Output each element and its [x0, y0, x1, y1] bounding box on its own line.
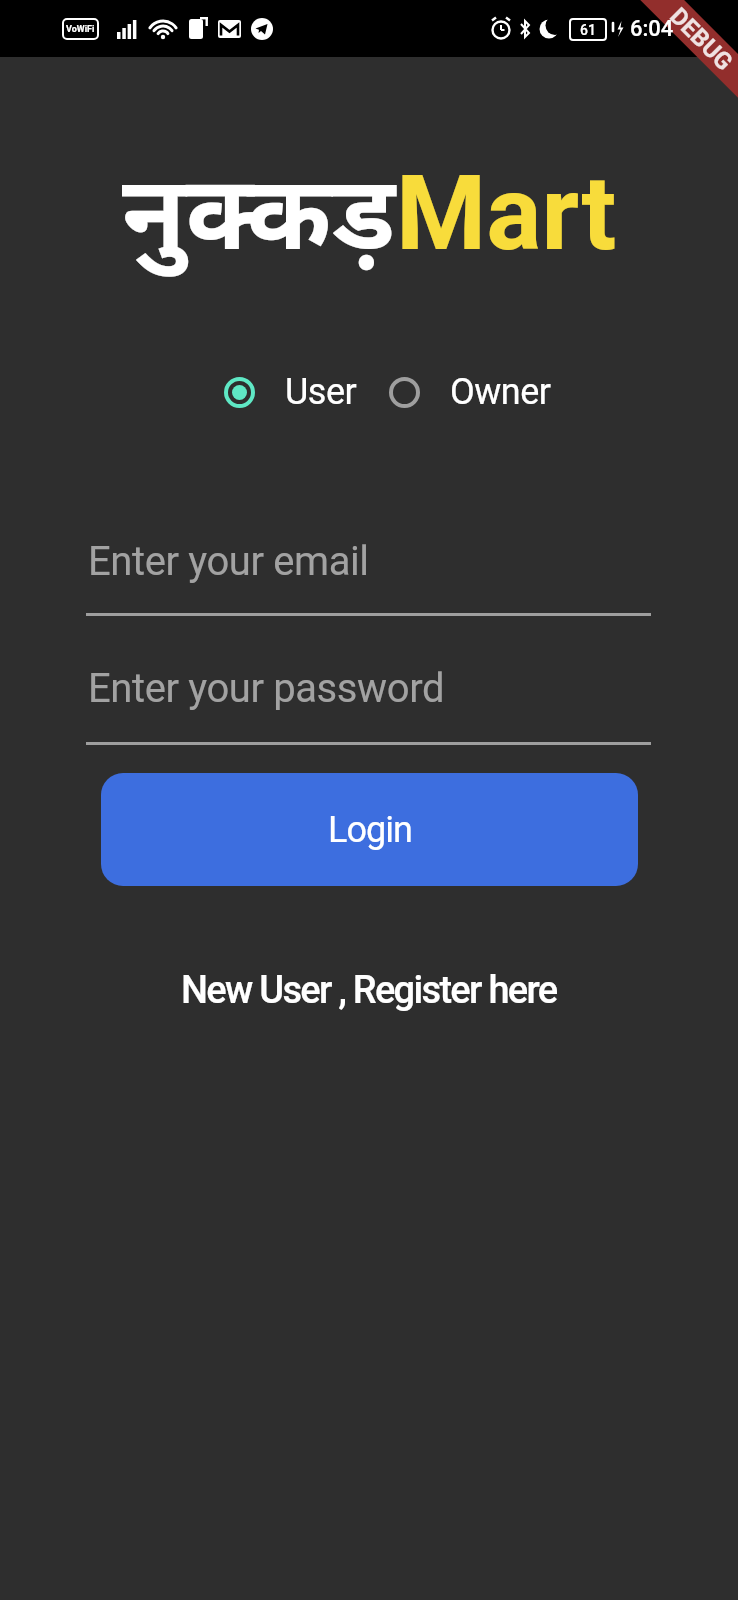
staticText: New User , Register here: [181, 968, 557, 1013]
staticText: नुक्कड़: [122, 139, 396, 279]
button[interactable]: Login: [101, 773, 638, 886]
staticText: Enter your email: [88, 538, 369, 585]
staticText: Mart: [396, 153, 617, 274]
button[interactable]: Enter your email: [88, 538, 369, 585]
staticText: VoWiFi: [66, 24, 95, 35]
staticText: Owner: [450, 371, 551, 413]
staticText: 6:04: [630, 16, 674, 42]
button[interactable]: Owner: [389, 371, 551, 413]
button[interactable]: User: [224, 371, 357, 413]
staticText: 61: [580, 22, 596, 38]
staticText: DEBUG: [664, 2, 738, 76]
button[interactable]: Enter your password: [88, 665, 445, 712]
staticText: Enter your password: [88, 665, 445, 712]
button[interactable]: New User , Register here: [181, 968, 557, 1013]
staticText: User: [285, 371, 357, 413]
staticText: Login: [328, 809, 412, 851]
